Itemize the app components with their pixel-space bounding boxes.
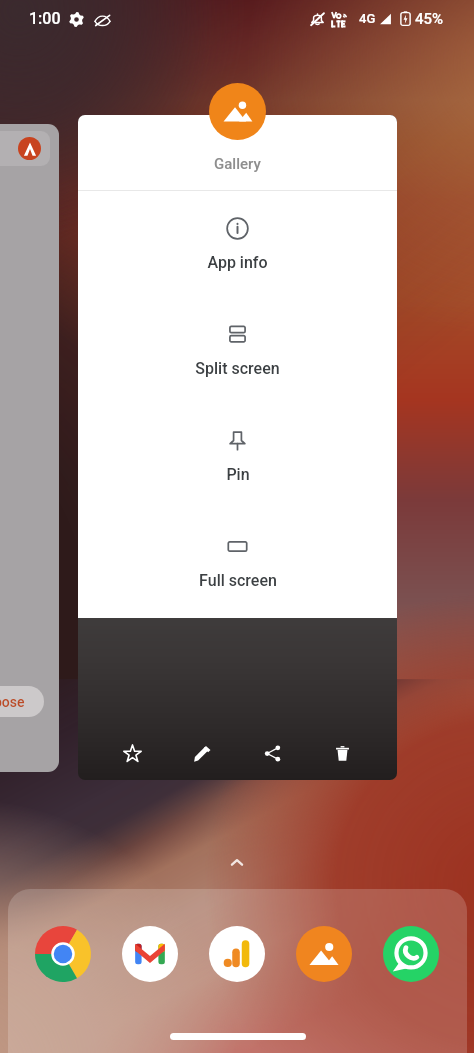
button[interactable]: pose (0, 124, 59, 772)
button[interactable]: Full screen (78, 509, 397, 615)
button[interactable]: Gmail (122, 926, 178, 982)
staticText: Full screen (199, 571, 277, 590)
button[interactable]: Chrome (35, 926, 91, 982)
staticText: pose (0, 694, 25, 710)
staticText: App info (207, 253, 268, 272)
button[interactable]: Analytics (209, 926, 265, 982)
button[interactable]: Edit (185, 736, 220, 771)
staticText: 4G (359, 11, 376, 26)
staticText: 45% (415, 10, 444, 28)
button[interactable]: Favorite (78, 115, 397, 780)
button[interactable]: Favorite (115, 736, 150, 771)
button[interactable]: Gallery (296, 926, 352, 982)
staticText: Gallery (214, 155, 261, 173)
button[interactable] (209, 83, 266, 140)
button[interactable]: App info (78, 191, 397, 297)
button[interactable]: Pin (78, 403, 397, 509)
button[interactable]: Expand (223, 849, 251, 877)
button[interactable]: Split screen (78, 297, 397, 403)
button[interactable]: Delete (325, 736, 360, 771)
staticText: Split screen (195, 359, 280, 378)
staticText: 1:00 (29, 9, 61, 28)
button[interactable]: Share (255, 736, 290, 771)
button[interactable]: WhatsApp (383, 926, 439, 982)
staticText: Pin (226, 465, 250, 484)
